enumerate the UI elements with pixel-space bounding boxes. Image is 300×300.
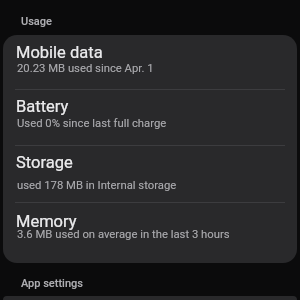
staticText: Used 0% since last full charge (17, 117, 167, 130)
staticText: 3.6 MB used on average in the last 3 hou… (17, 228, 230, 241)
staticText: 20.23 MB used since Apr. 1 (17, 62, 154, 75)
staticText: Mobile data (16, 43, 103, 62)
staticText: Storage (16, 153, 73, 172)
button[interactable] (3, 203, 297, 263)
button[interactable] (3, 35, 297, 89)
staticText: Battery (16, 97, 69, 116)
staticText: App settings (21, 277, 83, 290)
button[interactable] (3, 89, 297, 145)
staticText: Usage (21, 15, 52, 28)
staticText: used 178 MB in Internal storage (17, 179, 177, 192)
staticText: Memory (16, 212, 77, 231)
button[interactable] (3, 145, 297, 203)
